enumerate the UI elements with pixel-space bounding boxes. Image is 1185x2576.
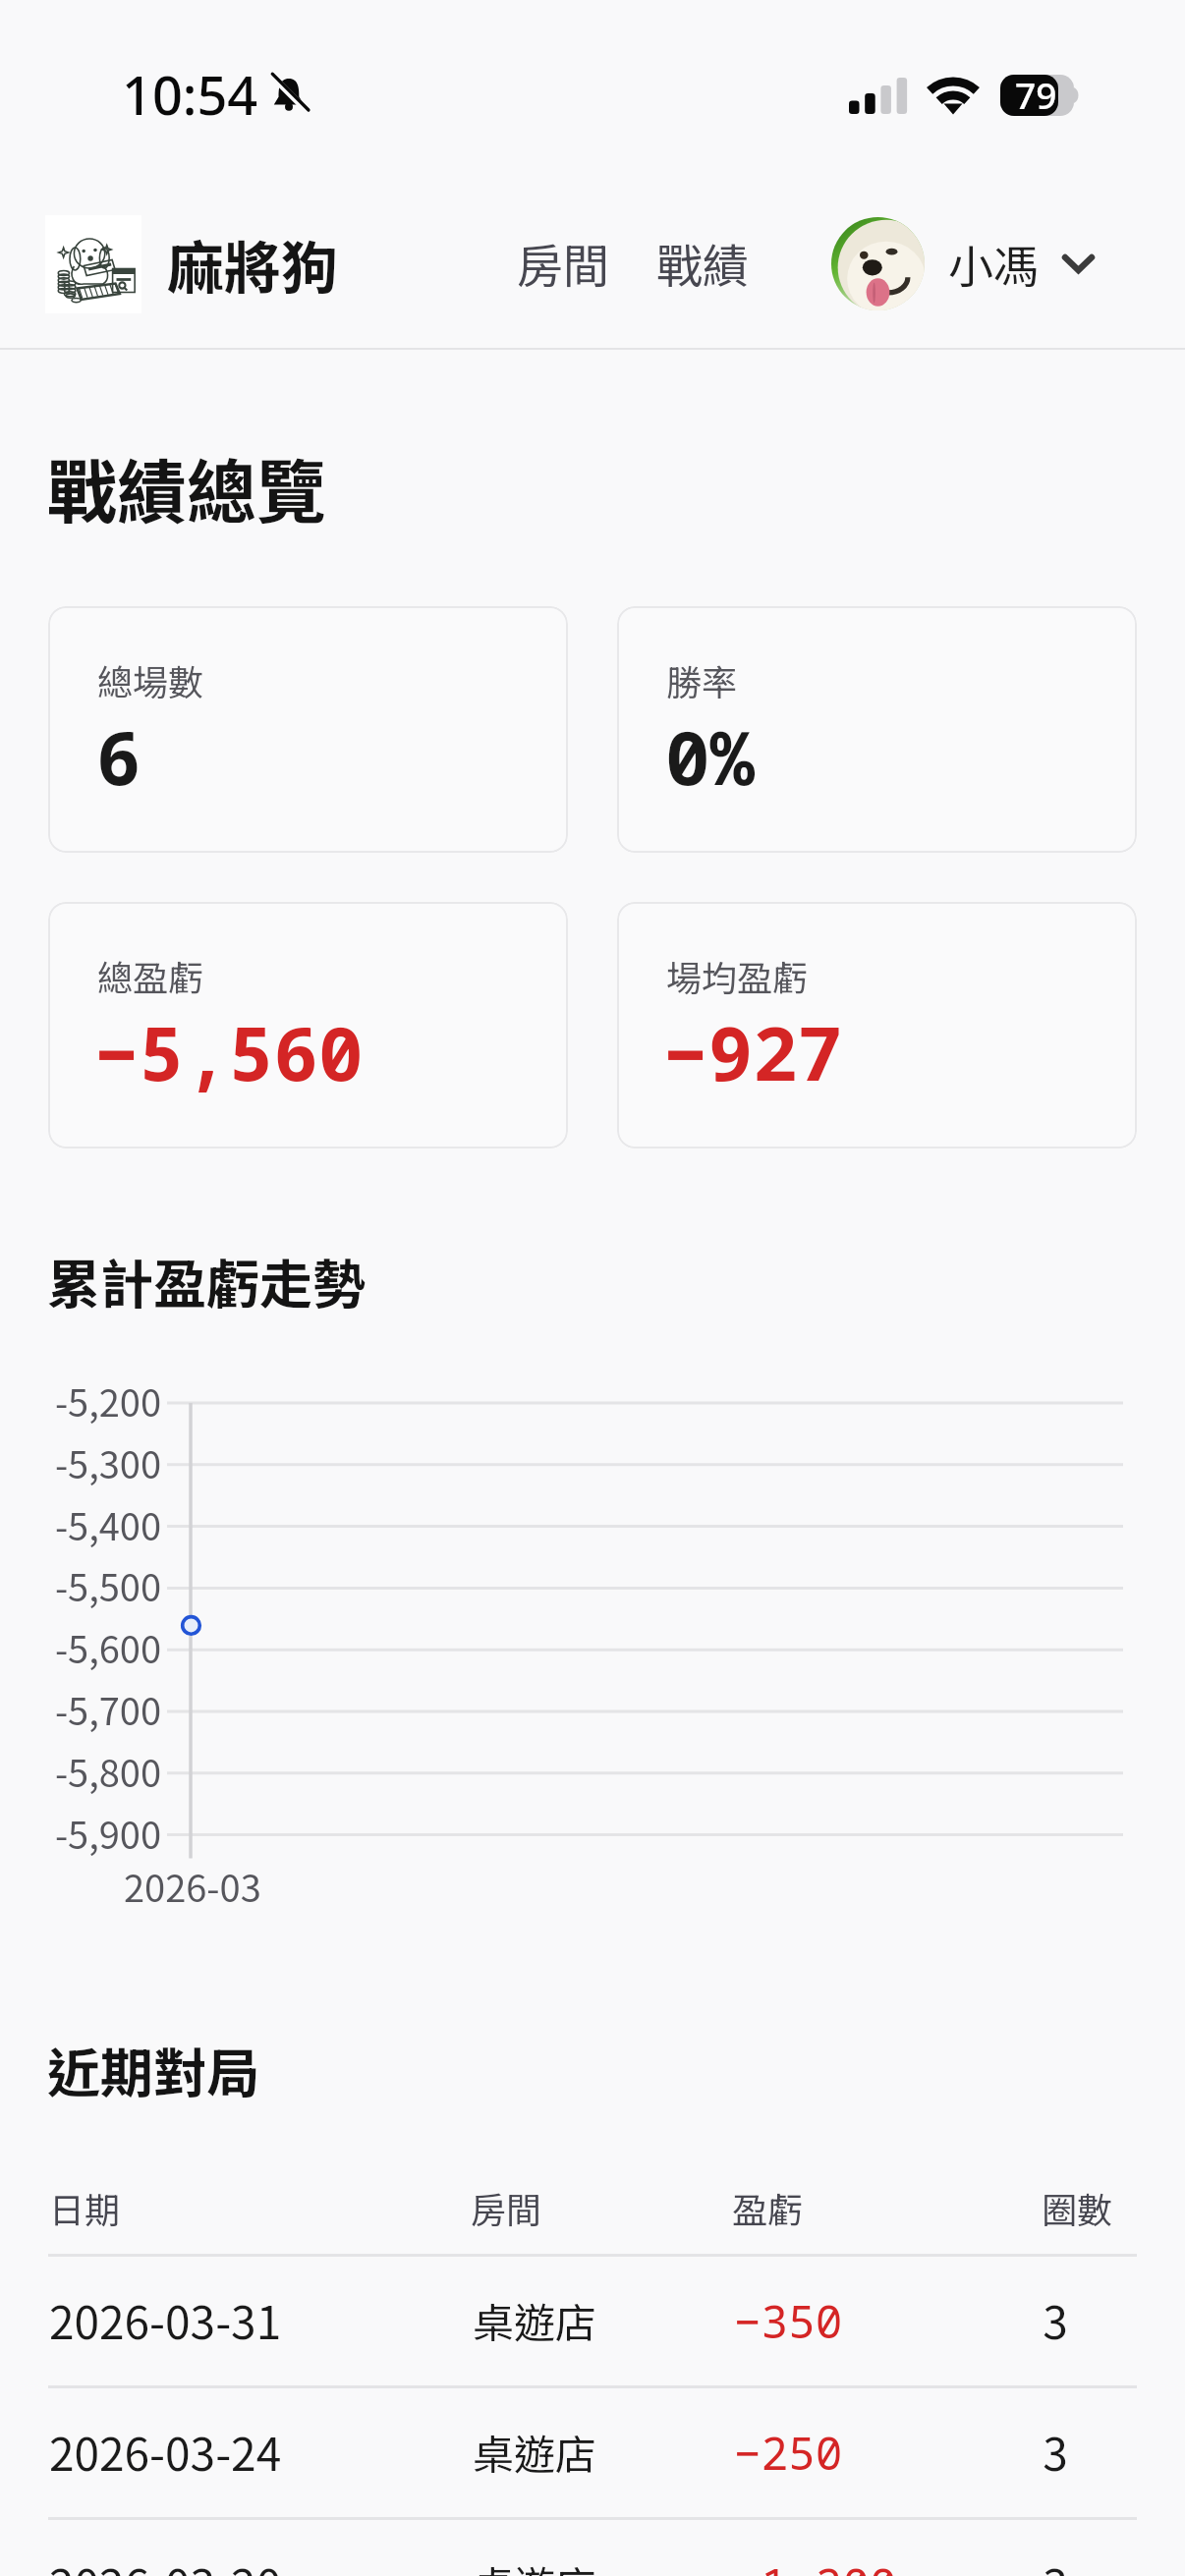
- button[interactable]: 麻將狗: [45, 196, 339, 332]
- staticText: -5,800: [3, 1744, 161, 1798]
- button[interactable]: 小馮: [831, 206, 1095, 320]
- button[interactable]: 勝率: [617, 606, 1137, 853]
- staticText: 桌遊店: [473, 2553, 597, 2576]
- staticText: -5,500: [3, 1558, 161, 1612]
- staticText: 日期: [49, 2182, 121, 2233]
- staticText: -5,900: [3, 1806, 161, 1860]
- button[interactable]: 總場數: [48, 606, 568, 853]
- staticText: 近期對局: [47, 2031, 259, 2107]
- staticText: −350: [734, 2290, 843, 2352]
- other: Mobile signal: [849, 77, 907, 114]
- button[interactable]: 2026-03-20: [48, 2520, 1137, 2576]
- staticText: -5,400: [3, 1497, 161, 1551]
- staticText: 0%: [665, 705, 756, 808]
- staticText: 戰績: [656, 229, 749, 296]
- staticText: 6: [96, 705, 141, 808]
- staticText: 2026-03: [124, 1859, 261, 1913]
- staticText: 10:54: [122, 58, 258, 131]
- staticText: 累計盈虧走勢: [47, 1242, 366, 1318]
- staticText: 麻將狗: [167, 223, 339, 306]
- other: Notifications silenced: [269, 75, 309, 118]
- staticText: 桌遊店: [473, 2422, 597, 2482]
- other: Battery 79 percent: [1000, 75, 1074, 124]
- staticText: 3: [1043, 2287, 1068, 2353]
- staticText: 2026-03-24: [49, 2419, 282, 2485]
- button[interactable]: 房間: [495, 215, 631, 309]
- staticText: 房間: [517, 229, 609, 296]
- staticText: 總盈虧: [97, 950, 204, 1001]
- staticText: 2026-03-31: [49, 2287, 282, 2353]
- staticText: 盈虧: [732, 2182, 804, 2233]
- button[interactable]: 2026-03-24: [48, 2388, 1137, 2520]
- staticText: 勝率: [666, 654, 738, 705]
- button[interactable]: 2026-03-31: [48, 2257, 1137, 2388]
- staticText: −250: [734, 2422, 843, 2484]
- staticText: 桌遊店: [473, 2290, 597, 2350]
- staticText: -5,700: [3, 1682, 161, 1736]
- staticText: 3: [1043, 2419, 1068, 2485]
- button[interactable]: 場均盈虧: [617, 902, 1137, 1148]
- button[interactable]: 戰績: [635, 215, 770, 309]
- staticText: -5,300: [3, 1435, 161, 1489]
- staticText: 場均盈虧: [666, 950, 809, 1001]
- staticText: 3: [1043, 2550, 1068, 2576]
- staticText: 戰績總覽: [47, 437, 327, 538]
- other: Account menu: [1062, 254, 1095, 273]
- staticText: -5,600: [3, 1620, 161, 1674]
- staticText: 圈數: [1042, 2182, 1113, 2233]
- staticText: 小馮: [948, 231, 1039, 297]
- staticText: 79: [1015, 70, 1057, 119]
- staticText: −5,560: [94, 1001, 364, 1103]
- staticText: −1,200: [734, 2553, 897, 2576]
- other: Wi-Fi: [928, 73, 979, 116]
- staticText: 房間: [471, 2182, 542, 2233]
- staticText: 2026-03-20: [49, 2550, 282, 2576]
- button[interactable]: 總盈虧: [48, 902, 568, 1148]
- staticText: −927: [663, 1001, 843, 1103]
- staticText: 總場數: [97, 654, 204, 705]
- staticText: -5,200: [3, 1373, 161, 1428]
